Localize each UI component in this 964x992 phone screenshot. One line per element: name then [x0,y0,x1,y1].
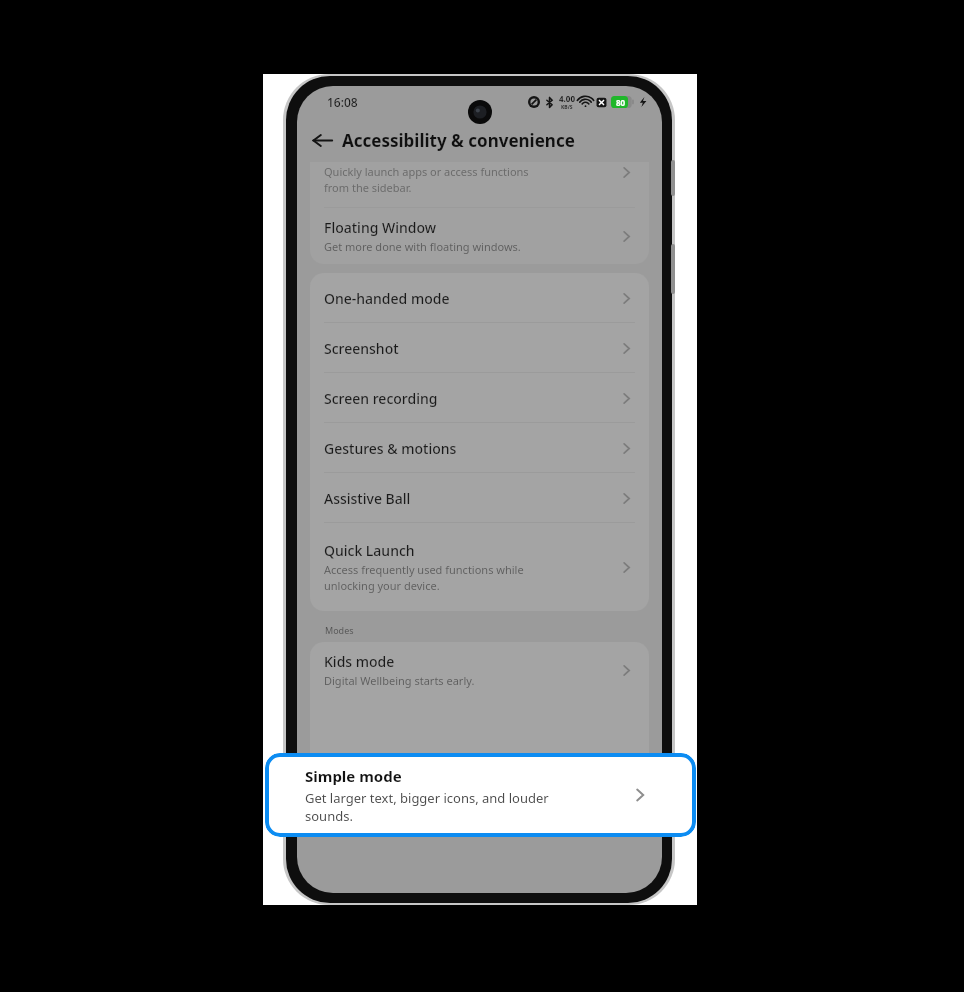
staticText: Quickly launch apps or access functions … [324,164,618,195]
staticText: KB/S [561,104,573,111]
staticText: Quick Launch [324,541,415,560]
staticText: Assistive Ball [324,489,618,508]
staticText: 4.00 [559,93,575,104]
button[interactable]: One-handed mode [310,273,649,323]
staticText: 80 [616,97,626,108]
button[interactable]: Back [305,123,339,157]
button[interactable]: Quickly launch apps or access functions … [310,162,649,208]
staticText: Gestures & motions [324,439,618,458]
staticText: Digital Wellbeing starts early. [324,673,475,688]
button[interactable]: Floating Window [310,208,649,264]
staticText: Access frequently used functions while u… [324,562,524,593]
staticText: Kids mode [324,652,395,671]
staticText: Screen recording [324,389,618,408]
staticText: Modes [325,624,354,636]
staticText: Accessibility & convenience [342,129,575,152]
staticText: Get larger text, bigger icons, and loude… [305,789,549,825]
button[interactable]: Gestures & motions [310,423,649,473]
staticText: One-handed mode [324,289,618,308]
staticText: Screenshot [324,339,618,358]
staticText: 16:08 [327,94,358,110]
button[interactable]: Assistive Ball [310,473,649,523]
button[interactable]: Simple mode [265,753,696,837]
staticText: Get more done with floating windows. [324,239,521,254]
button[interactable]: Quick Launch [310,523,649,611]
staticText: Other [325,796,350,808]
button[interactable]: Screen recording [310,373,649,423]
staticText: Floating Window [324,218,436,237]
button[interactable]: Screenshot [310,323,649,373]
staticText: Simple mode [305,766,402,786]
button[interactable]: Kids mode [310,642,649,698]
